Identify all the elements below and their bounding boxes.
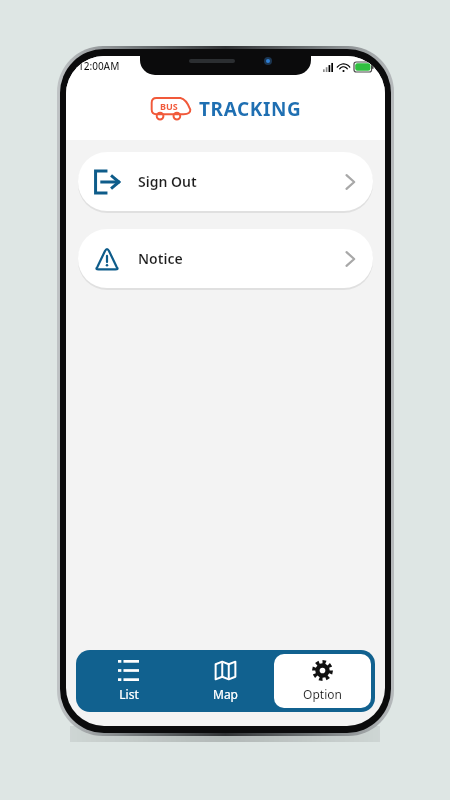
- staticText: List: [119, 686, 139, 702]
- button[interactable]: Notice: [78, 229, 373, 288]
- staticText: BUS: [160, 100, 178, 112]
- button[interactable]: Sign Out: [78, 152, 373, 211]
- button[interactable]: List: [80, 654, 177, 708]
- button[interactable]: Map: [177, 654, 274, 708]
- button[interactable]: Option: [274, 654, 371, 708]
- staticText: Notice: [138, 249, 183, 268]
- staticText: Option: [303, 686, 342, 702]
- staticText: TRACKING: [199, 96, 302, 122]
- staticText: Map: [213, 686, 238, 702]
- staticText: 12:00AM: [78, 59, 120, 73]
- staticText: Sign Out: [138, 172, 197, 191]
